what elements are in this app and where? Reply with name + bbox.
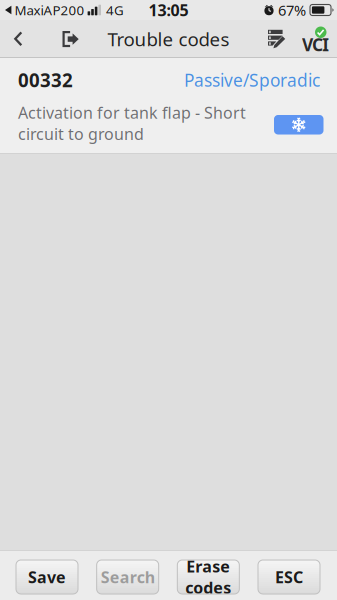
staticText: Save: [28, 566, 66, 588]
staticText: 67%: [278, 0, 306, 20]
button[interactable]: ESC: [258, 560, 320, 594]
button[interactable]: Back: [0, 20, 37, 58]
staticText: 00332: [18, 68, 73, 92]
staticText: Trouble codes: [107, 27, 229, 51]
staticText: ESC: [275, 566, 303, 588]
staticText: MaxiAP200: [15, 1, 85, 19]
staticText: 13:05: [148, 0, 188, 21]
button[interactable]: Edit report: [257, 20, 297, 58]
button[interactable]: Save: [16, 560, 78, 594]
staticText: Passive/Sporadic: [184, 68, 320, 91]
staticText: 4G: [106, 1, 124, 19]
button[interactable]: Exit: [37, 20, 105, 58]
button[interactable]: Erase: [177, 560, 239, 594]
staticText: Search: [101, 566, 155, 588]
button[interactable]: Search: [97, 560, 159, 594]
button[interactable]: VCI connected: [297, 20, 337, 58]
staticText: VCI: [302, 33, 329, 56]
staticText: Activation for tank flap - Short circuit…: [18, 102, 246, 144]
button[interactable]: Freeze frame: [274, 115, 323, 134]
staticText: codes: [185, 577, 231, 598]
staticText: Erase: [186, 556, 230, 577]
